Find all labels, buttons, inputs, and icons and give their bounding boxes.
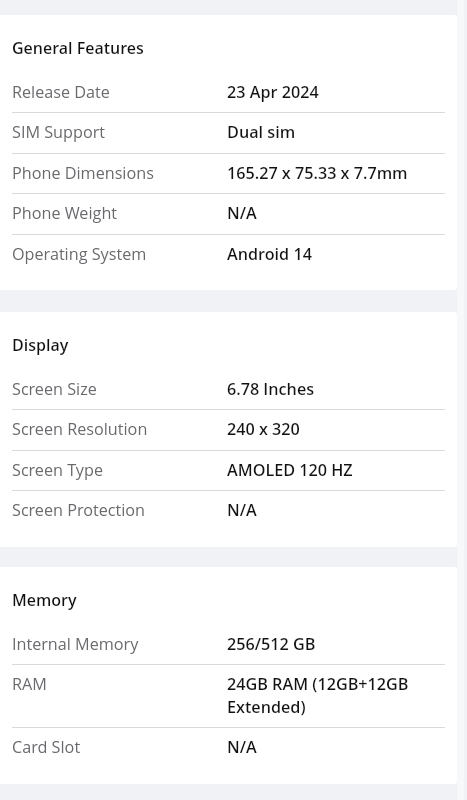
- staticText: 24GB RAM (12GB+12GB Extended): [227, 673, 445, 717]
- button[interactable]: Screen Resolution: [0, 409, 457, 450]
- staticText: Card Slot: [12, 736, 227, 758]
- button[interactable]: Phone Dimensions: [0, 153, 457, 194]
- staticText: 256/512 GB: [227, 633, 445, 655]
- button[interactable]: Screen Protection: [0, 490, 457, 531]
- staticText: 23 Apr 2024: [227, 81, 445, 103]
- button[interactable]: Screen Size: [0, 369, 457, 410]
- staticText: SIM Support: [12, 121, 227, 143]
- staticText: Dual sim: [227, 121, 445, 143]
- button[interactable]: Card Slot: [0, 727, 457, 768]
- button[interactable]: Operating System: [0, 234, 457, 275]
- button[interactable]: Screen Type: [0, 450, 457, 491]
- staticText: Display: [12, 334, 69, 356]
- staticText: Release Date: [12, 81, 227, 103]
- staticText: Operating System: [12, 243, 227, 265]
- staticText: Phone Weight: [12, 202, 227, 224]
- staticText: 6.78 Inches: [227, 378, 445, 400]
- button[interactable]: Release Date: [0, 72, 457, 113]
- button[interactable]: Phone Weight: [0, 193, 457, 234]
- staticText: Screen Size: [12, 378, 227, 400]
- staticText: Screen Type: [12, 459, 227, 481]
- staticText: Phone Dimensions: [12, 162, 227, 184]
- staticText: N/A: [227, 202, 445, 224]
- button[interactable]: RAM: [0, 664, 457, 727]
- staticText: Screen Resolution: [12, 418, 227, 440]
- staticText: Internal Memory: [12, 633, 227, 655]
- staticText: N/A: [227, 499, 445, 521]
- staticText: Memory: [12, 589, 77, 611]
- staticText: General Features: [12, 37, 144, 59]
- staticText: 165.27 x 75.33 x 7.7mm: [227, 162, 445, 184]
- staticText: Android 14: [227, 243, 445, 265]
- staticText: 240 x 320: [227, 418, 445, 440]
- button[interactable]: Internal Memory: [0, 624, 457, 665]
- staticText: AMOLED 120 HZ: [227, 459, 445, 481]
- staticText: N/A: [227, 736, 445, 758]
- staticText: Screen Protection: [12, 499, 227, 521]
- staticText: RAM: [12, 673, 227, 695]
- button[interactable]: SIM Support: [0, 112, 457, 153]
